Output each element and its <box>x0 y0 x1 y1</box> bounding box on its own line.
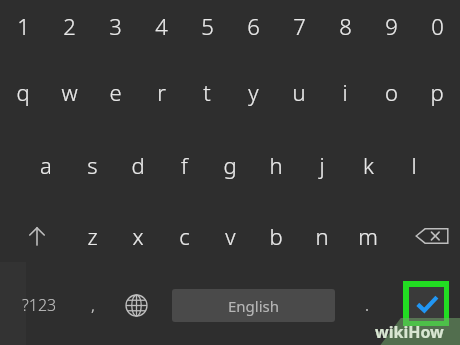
staticText: q <box>16 77 30 107</box>
button[interactable]: j <box>299 134 345 196</box>
staticText: ?123 <box>22 294 57 316</box>
button[interactable]: 5 <box>184 0 230 57</box>
button[interactable]: 0 <box>414 0 460 57</box>
button[interactable]: 3 <box>92 0 138 57</box>
staticText: o <box>385 77 398 107</box>
button[interactable]: z <box>69 205 115 267</box>
staticText: , <box>91 295 96 315</box>
button[interactable]: u <box>276 61 322 123</box>
button[interactable]: . <box>346 282 388 328</box>
button[interactable]: b <box>253 205 299 267</box>
button[interactable]: a <box>23 134 69 196</box>
button[interactable]: d <box>115 134 161 196</box>
staticText: m <box>358 221 378 251</box>
staticText: z <box>87 221 98 251</box>
staticText: 7 <box>293 11 306 41</box>
button[interactable]: l <box>391 134 437 196</box>
staticText: n <box>315 221 329 251</box>
staticText: wikiHow <box>375 321 444 343</box>
staticText: l <box>411 150 417 180</box>
button[interactable]: w <box>46 61 92 123</box>
staticText: i <box>342 77 348 107</box>
staticText: d <box>131 150 145 180</box>
button[interactable]: 6 <box>230 0 276 57</box>
staticText: e <box>109 77 122 107</box>
staticText: 4 <box>155 11 168 41</box>
staticText: u <box>292 77 306 107</box>
staticText: g <box>223 150 237 180</box>
button[interactable]: s <box>69 134 115 196</box>
button[interactable]: English <box>172 289 335 322</box>
staticText: f <box>181 150 188 180</box>
staticText: t <box>203 77 211 107</box>
button[interactable]: m <box>345 205 391 267</box>
button[interactable]: x <box>115 205 161 267</box>
button[interactable]: i <box>322 61 368 123</box>
button[interactable]: 9 <box>368 0 414 57</box>
staticText: k <box>363 150 374 180</box>
button[interactable]: o <box>368 61 414 123</box>
button[interactable]: n <box>299 205 345 267</box>
staticText: p <box>430 77 444 107</box>
button[interactable]: y <box>230 61 276 123</box>
staticText: 3 <box>109 11 122 41</box>
button[interactable]: q <box>0 61 46 123</box>
staticText: x <box>132 221 144 251</box>
button[interactable]: r <box>138 61 184 123</box>
button[interactable]: t <box>184 61 230 123</box>
button[interactable]: Change language <box>114 282 158 328</box>
button[interactable]: ?123 <box>8 282 70 328</box>
staticText: 1 <box>17 11 30 41</box>
button[interactable]: 4 <box>138 0 184 57</box>
button[interactable]: 8 <box>322 0 368 57</box>
button[interactable]: Enter <box>403 281 449 326</box>
staticText: v <box>225 221 236 251</box>
button[interactable]: 1 <box>0 0 46 57</box>
staticText: a <box>40 150 52 180</box>
staticText: b <box>269 221 283 251</box>
staticText: r <box>157 77 166 107</box>
staticText: . <box>365 295 370 315</box>
staticText: English <box>228 296 280 316</box>
staticText: s <box>87 150 98 180</box>
staticText: y <box>248 77 259 107</box>
staticText: 5 <box>201 11 214 41</box>
staticText: 0 <box>431 11 444 41</box>
button[interactable]: f <box>161 134 207 196</box>
button[interactable]: 2 <box>46 0 92 57</box>
staticText: c <box>179 221 190 251</box>
staticText: h <box>269 150 283 180</box>
button[interactable]: h <box>253 134 299 196</box>
staticText: 6 <box>247 11 260 41</box>
staticText: 9 <box>385 11 398 41</box>
button[interactable]: 7 <box>276 0 322 57</box>
button[interactable]: , <box>72 282 114 328</box>
button[interactable]: v <box>207 205 253 267</box>
button[interactable]: p <box>414 61 460 123</box>
button[interactable]: k <box>345 134 391 196</box>
button[interactable]: g <box>207 134 253 196</box>
button[interactable]: Backspace <box>409 208 455 264</box>
button[interactable]: c <box>161 205 207 267</box>
button[interactable]: e <box>92 61 138 123</box>
staticText: 8 <box>339 11 352 41</box>
staticText: 2 <box>63 11 76 41</box>
staticText: w <box>61 77 78 107</box>
button[interactable]: Shift <box>14 208 60 264</box>
staticText: j <box>319 150 325 180</box>
